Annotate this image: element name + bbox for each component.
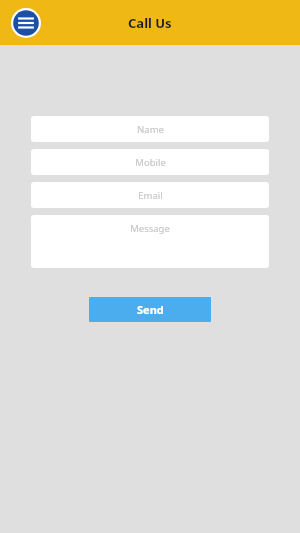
button[interactable]: Send xyxy=(89,297,211,322)
button[interactable]: Message xyxy=(31,215,269,268)
staticText: Name xyxy=(137,123,164,136)
button[interactable]: Email xyxy=(31,182,269,208)
staticText: Call Us xyxy=(128,14,172,32)
button[interactable]: Mobile xyxy=(31,149,269,175)
staticText: Mobile xyxy=(135,156,166,169)
button[interactable]: Name xyxy=(31,116,269,142)
staticText: Message xyxy=(130,222,170,235)
staticText: Send xyxy=(137,302,164,317)
button[interactable]: Open navigation menu xyxy=(11,8,41,38)
staticText: Email xyxy=(138,189,163,202)
